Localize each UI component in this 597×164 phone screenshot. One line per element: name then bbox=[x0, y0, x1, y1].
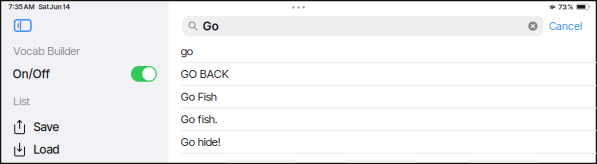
button[interactable]: Save bbox=[1, 116, 168, 138]
staticText: go bbox=[181, 44, 193, 58]
button[interactable]: Cancel bbox=[549, 16, 584, 36]
button[interactable]: GO BACK bbox=[168, 63, 595, 85]
staticText: Vocab Builder bbox=[13, 44, 80, 58]
staticText: Go bbox=[203, 19, 219, 33]
staticText: Cancel bbox=[549, 19, 582, 33]
staticText: GO BACK bbox=[181, 67, 229, 81]
button[interactable]: Go hide! bbox=[168, 131, 595, 153]
staticText: Save bbox=[33, 120, 59, 134]
button[interactable]: Load bbox=[1, 138, 168, 160]
button[interactable]: Hide Sidebar bbox=[1, 18, 168, 33]
staticText: 73% bbox=[558, 2, 573, 11]
button[interactable]: On/Off bbox=[131, 66, 157, 82]
button[interactable]: Go Fish bbox=[168, 86, 595, 108]
button[interactable]: Go fish. bbox=[168, 108, 595, 131]
staticText: List bbox=[13, 94, 30, 108]
staticText: Go Fish bbox=[181, 90, 217, 103]
staticText: Go fish. bbox=[181, 112, 218, 126]
staticText: Go hide! bbox=[181, 135, 221, 149]
staticText: Load bbox=[33, 142, 59, 156]
button[interactable]: go bbox=[168, 40, 595, 63]
button[interactable]: Clear search text bbox=[528, 21, 537, 31]
staticText: 7:35 AM bbox=[8, 3, 34, 11]
staticText: Sat Jun 14 bbox=[38, 3, 69, 11]
staticText: On/Off bbox=[13, 67, 50, 81]
